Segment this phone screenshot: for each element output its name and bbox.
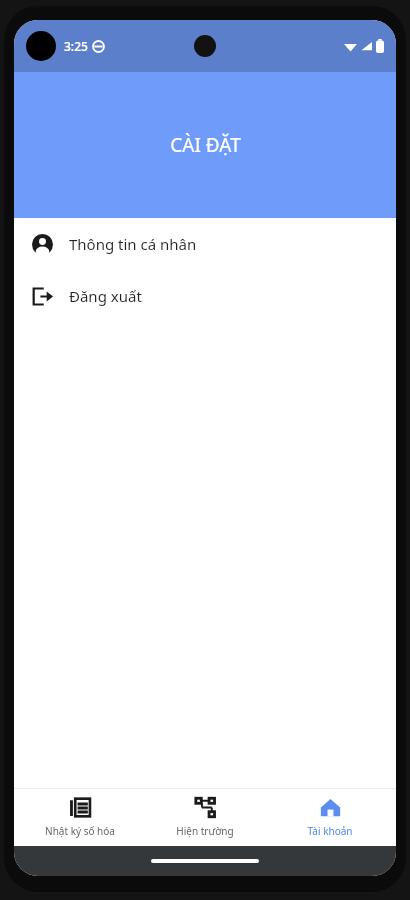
staticText: CÀI ĐẶT xyxy=(170,132,241,158)
staticText: Thông tin cá nhân xyxy=(69,234,197,254)
button[interactable]: Thông tin cá nhân xyxy=(14,218,396,270)
button[interactable]: Hiện trường xyxy=(146,788,264,846)
button[interactable]: Tài khoản xyxy=(271,788,389,846)
staticText: Đăng xuất xyxy=(69,286,142,306)
staticText: Tài khoản xyxy=(307,824,353,838)
button[interactable]: Nhật ký số hóa xyxy=(21,788,139,846)
button[interactable]: Đăng xuất xyxy=(14,270,396,322)
staticText: 3:25 xyxy=(64,38,88,54)
staticText: Nhật ký số hóa xyxy=(45,824,115,838)
staticText: Hiện trường xyxy=(176,824,234,838)
